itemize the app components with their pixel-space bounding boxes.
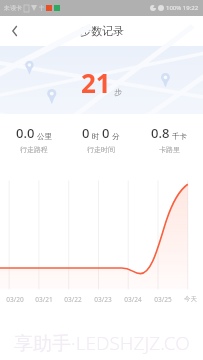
- staticText: 今天: [184, 295, 197, 303]
- staticText: 100% 19:22: [166, 4, 199, 12]
- staticText: 行走路程: [20, 145, 48, 154]
- staticText: 03/25: [154, 295, 172, 304]
- staticText: 03/21: [35, 295, 53, 304]
- staticText: 0.0: [16, 124, 35, 142]
- staticText: 0: [82, 124, 90, 142]
- button[interactable]: Back: [0, 16, 30, 46]
- staticText: 0: [102, 124, 110, 142]
- staticText: 卡路里: [159, 145, 180, 154]
- staticText: 03/22: [64, 295, 82, 304]
- staticText: 行走时间: [87, 145, 115, 154]
- staticText: 未读卡: [4, 4, 22, 12]
- staticText: 21: [81, 65, 111, 100]
- staticText: 千卡: [172, 132, 187, 141]
- button[interactable]: 0.8: [135, 124, 203, 154]
- staticText: 03/23: [94, 295, 112, 304]
- staticText: 0.8: [151, 124, 170, 142]
- staticText: 享助手·LEDSHZJZ.CO: [14, 330, 190, 356]
- button[interactable]: 0.0: [0, 124, 67, 154]
- staticText: 公里: [37, 132, 52, 141]
- staticText: 分: [112, 132, 120, 141]
- button[interactable]: 0: [67, 124, 135, 154]
- staticText: 时: [92, 132, 100, 141]
- staticText: 03/20: [6, 295, 24, 304]
- staticText: 03/24: [124, 295, 142, 304]
- staticText: 步: [114, 87, 122, 97]
- staticText: 步数记录: [80, 24, 124, 38]
